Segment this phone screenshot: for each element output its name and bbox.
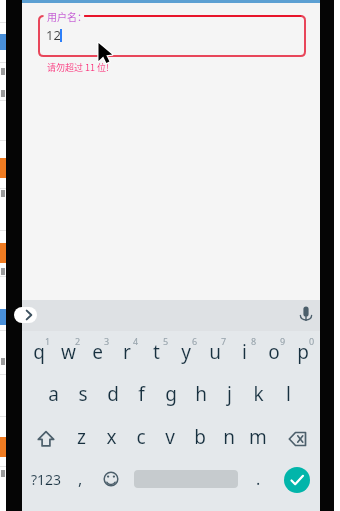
button[interactable]: v — [155, 416, 184, 458]
button[interactable]: c — [126, 416, 155, 458]
button[interactable]: x — [97, 416, 126, 458]
button[interactable]: y — [171, 331, 200, 373]
button[interactable]: q — [24, 331, 53, 373]
staticText: 1 — [45, 335, 51, 347]
button[interactable]: t — [142, 331, 171, 373]
button[interactable]: p — [288, 331, 317, 373]
button[interactable]: o — [259, 331, 288, 373]
staticText: b — [194, 424, 206, 450]
button[interactable]: Expand toolbar — [14, 307, 37, 323]
button[interactable]: Shift — [28, 418, 64, 460]
staticText: h — [195, 381, 207, 407]
button[interactable]: Emoji — [95, 458, 127, 500]
staticText: 8 — [251, 335, 257, 347]
button[interactable]: z — [67, 416, 96, 458]
button[interactable]: m — [243, 416, 272, 458]
button[interactable]: , — [66, 458, 94, 500]
staticText: 9 — [280, 335, 286, 347]
staticText: 请勿超过 11 位! — [47, 61, 109, 74]
staticText: 4 — [133, 335, 139, 347]
staticText: 7 — [221, 335, 227, 347]
staticText: s — [78, 381, 88, 407]
button[interactable]: e — [83, 331, 112, 373]
staticText: 6 — [192, 335, 198, 347]
staticText: . — [256, 468, 261, 490]
button[interactable]: a — [39, 373, 68, 415]
button[interactable]: Enter — [284, 467, 310, 493]
button[interactable]: h — [186, 373, 215, 415]
button[interactable]: Backspace — [278, 418, 318, 460]
staticText: i — [242, 339, 247, 365]
staticText: , — [78, 468, 83, 490]
button[interactable]: i — [230, 331, 259, 373]
staticText: r — [123, 339, 131, 365]
staticText: f — [138, 381, 145, 407]
staticText: t — [153, 339, 160, 365]
staticText: w — [61, 339, 76, 365]
staticText: l — [286, 381, 291, 407]
button[interactable]: b — [185, 416, 214, 458]
staticText: x — [106, 424, 117, 450]
button[interactable]: d — [98, 373, 127, 415]
button[interactable]: ?123 — [24, 458, 68, 500]
staticText: p — [297, 339, 309, 365]
button[interactable]: f — [127, 373, 156, 415]
staticText: y — [181, 339, 191, 365]
staticText: e — [92, 339, 103, 365]
button[interactable]: l — [274, 373, 303, 415]
staticText: 5 — [163, 335, 169, 347]
button[interactable]: . — [244, 458, 272, 500]
staticText: n — [223, 424, 235, 450]
button[interactable]: Voice input — [295, 303, 317, 325]
button[interactable]: g — [156, 373, 185, 415]
button[interactable]: k — [244, 373, 273, 415]
staticText: c — [136, 424, 146, 450]
staticText: q — [33, 339, 45, 365]
staticText: 12 — [46, 26, 61, 44]
staticText: m — [249, 424, 267, 450]
staticText: g — [165, 381, 177, 407]
staticText: z — [77, 424, 86, 450]
button[interactable]: w — [54, 331, 83, 373]
button[interactable]: u — [200, 331, 229, 373]
button[interactable]: r — [112, 331, 141, 373]
staticText: d — [107, 381, 119, 407]
staticText: k — [253, 381, 264, 407]
button[interactable]: j — [215, 373, 244, 415]
staticText: v — [165, 424, 175, 450]
staticText: ?123 — [31, 470, 62, 489]
staticText: 用户名： — [47, 9, 87, 23]
staticText: a — [48, 381, 59, 407]
staticText: o — [268, 339, 280, 365]
staticText: 0 — [309, 335, 315, 347]
staticText: u — [209, 339, 221, 365]
staticText: 2 — [75, 335, 81, 347]
staticText: 3 — [104, 335, 110, 347]
staticText: j — [227, 381, 232, 407]
button[interactable]: n — [214, 416, 243, 458]
button[interactable]: s — [68, 373, 97, 415]
